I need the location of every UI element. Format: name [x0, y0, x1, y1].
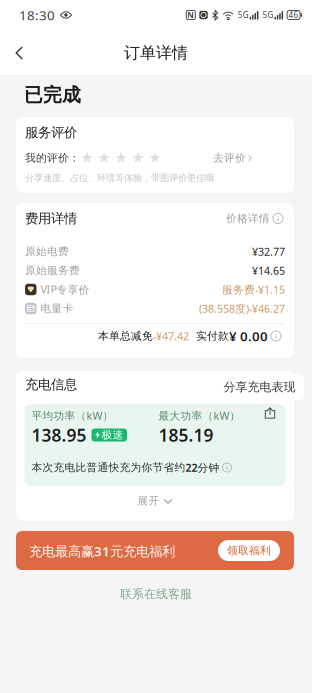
- button[interactable]: 分享: [264, 407, 275, 419]
- staticText: 服务费-¥1.15: [222, 282, 285, 297]
- staticText: VIP专享价: [40, 282, 89, 297]
- staticText: 最大功率（kW）: [158, 408, 240, 423]
- staticText: N: [187, 10, 194, 20]
- staticText: 18:30: [19, 6, 55, 24]
- staticText: 电量卡: [40, 302, 73, 315]
- staticText: 充电信息: [25, 376, 77, 393]
- staticText: 平均功率（kW）: [31, 408, 113, 423]
- staticText: 5G: [238, 10, 249, 20]
- staticText: -¥47.42: [153, 329, 189, 343]
- staticText: ¥ 0.00: [229, 327, 268, 345]
- staticText: (38.558度)-¥46.27: [199, 301, 285, 316]
- button[interactable]: 分享充电表现: [215, 374, 304, 400]
- button[interactable]: 返回: [0, 32, 38, 74]
- button[interactable]: 充电最高赢31元充电福利: [16, 531, 294, 570]
- staticText: 我的评价：: [25, 151, 80, 164]
- staticText: 138.95: [31, 423, 86, 446]
- staticText: 充电最高赢31元充电福利: [29, 542, 175, 560]
- button[interactable]: 去评价: [213, 150, 252, 166]
- staticText: 展开: [137, 494, 159, 507]
- staticText: 已完成: [24, 83, 81, 106]
- staticText: 联系在线客服: [120, 587, 192, 601]
- staticText: 185.19: [158, 423, 213, 446]
- staticText: 22分钟: [185, 460, 219, 475]
- staticText: 服务评价: [25, 124, 77, 141]
- staticText: 分享充电表现: [223, 380, 295, 394]
- staticText: 46: [289, 10, 299, 20]
- staticText: 原始电费: [25, 245, 69, 258]
- staticText: 分享速度、占位、环境等体验，带图评价更佳哦: [25, 172, 214, 184]
- staticText: 5G: [262, 10, 273, 20]
- button[interactable]: 价格详情: [217, 211, 283, 226]
- staticText: ¥32.77: [252, 244, 285, 259]
- button[interactable]: 展开: [137, 493, 172, 509]
- staticText: 领取福利: [227, 544, 271, 557]
- staticText: 本次充电比普通快充为你节省约: [31, 461, 185, 474]
- staticText: 费用详情: [25, 210, 77, 227]
- staticText: 本单总减免: [98, 329, 153, 342]
- staticText: 极速: [101, 428, 123, 441]
- staticText: 订单详情: [124, 43, 188, 63]
- staticText: 去评价: [213, 151, 246, 164]
- staticText: ¥14.65: [252, 263, 285, 278]
- staticText: 实付款: [196, 329, 229, 342]
- staticText: 价格详情: [226, 212, 270, 225]
- button[interactable]: 联系在线客服: [120, 586, 192, 602]
- staticText: 原始服务费: [25, 264, 80, 277]
